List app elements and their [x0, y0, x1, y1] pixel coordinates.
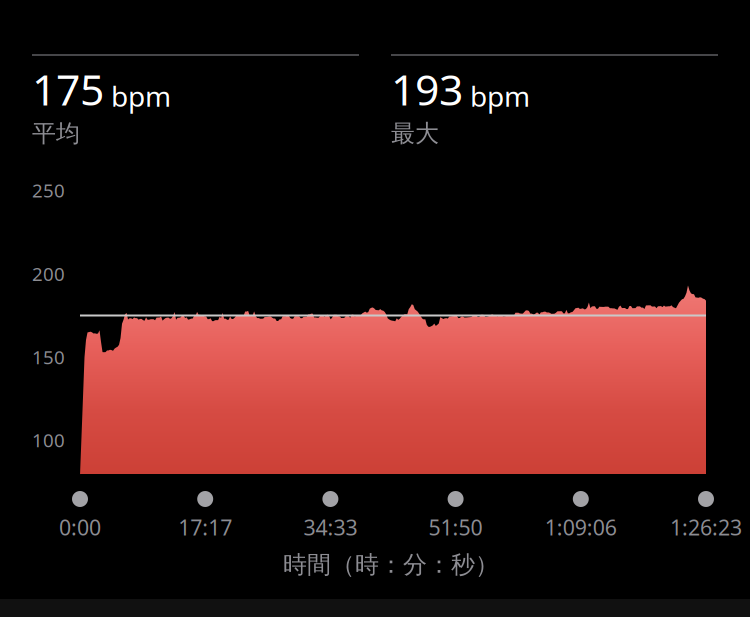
button[interactable]: 175 — [32, 0, 359, 150]
staticText: 250 — [32, 178, 65, 203]
staticText: 1:26:23 — [670, 513, 742, 541]
staticText: 時間（時：分：秒） — [283, 550, 499, 579]
staticText: 175 — [32, 61, 104, 117]
staticText: 最大 — [391, 119, 439, 148]
staticText: bpm — [111, 77, 171, 114]
staticText: bpm — [470, 77, 530, 114]
staticText: 193 — [391, 61, 463, 117]
staticText: 0:00 — [59, 513, 101, 541]
staticText: 51:50 — [429, 513, 483, 541]
staticText: 17:17 — [178, 513, 232, 541]
button[interactable]: 193 — [391, 0, 718, 150]
staticText: 1:09:06 — [545, 513, 617, 541]
staticText: 平均 — [32, 119, 80, 148]
staticText: 200 — [32, 261, 65, 286]
staticText: 34:33 — [303, 513, 357, 541]
staticText: 100 — [32, 427, 65, 452]
staticText: 150 — [32, 345, 65, 369]
